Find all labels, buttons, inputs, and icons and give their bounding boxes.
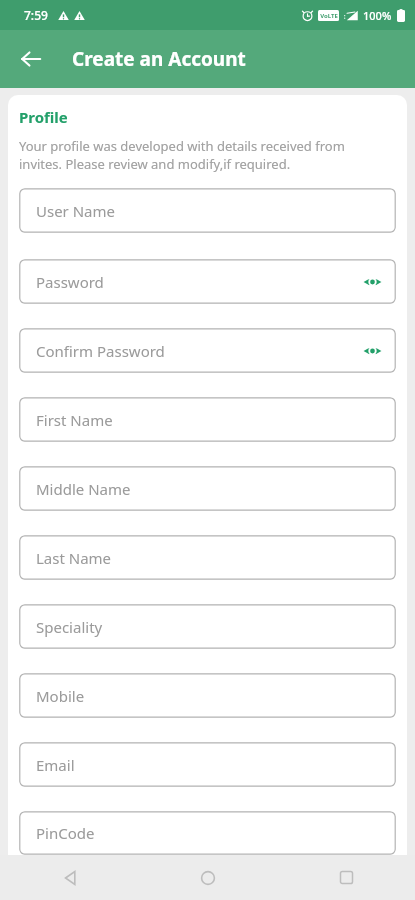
button[interactable]: First Name — [19, 397, 396, 442]
button[interactable]: Email — [19, 742, 396, 787]
staticText: Confirm Password — [36, 341, 165, 361]
staticText: 100% — [363, 8, 392, 23]
staticText: Password — [36, 272, 104, 292]
button[interactable]: Home — [139, 855, 277, 900]
button[interactable]: PinCode — [19, 811, 396, 855]
staticText: Last Name — [36, 548, 112, 568]
staticText: Profile — [19, 107, 68, 127]
button[interactable]: Last Name — [19, 535, 396, 580]
button[interactable]: Back — [10, 38, 52, 80]
staticText: User Name — [36, 201, 116, 221]
button[interactable]: Show password — [355, 265, 389, 299]
button[interactable]: Speciality — [19, 604, 396, 649]
staticText: Mobile — [36, 686, 85, 706]
staticText: PinCode — [36, 823, 95, 843]
staticText: Email — [36, 755, 75, 775]
staticText: Create an Account — [72, 46, 246, 72]
button[interactable]: Confirm Password — [19, 328, 396, 373]
button[interactable]: Password — [19, 259, 396, 304]
button[interactable]: User Name — [19, 188, 396, 233]
staticText: First Name — [36, 410, 113, 430]
staticText: 7:59 — [24, 7, 48, 23]
button[interactable]: Back — [0, 855, 139, 900]
button[interactable]: Middle Name — [19, 466, 396, 511]
button[interactable]: Mobile — [19, 673, 396, 718]
staticText: Speciality — [36, 617, 103, 637]
staticText: Middle Name — [36, 479, 131, 499]
button[interactable]: Recent apps — [277, 855, 415, 900]
staticText: VoLTE — [320, 12, 338, 20]
staticText: Your profile was developed with details … — [19, 137, 345, 173]
button[interactable]: Show password — [355, 334, 389, 368]
